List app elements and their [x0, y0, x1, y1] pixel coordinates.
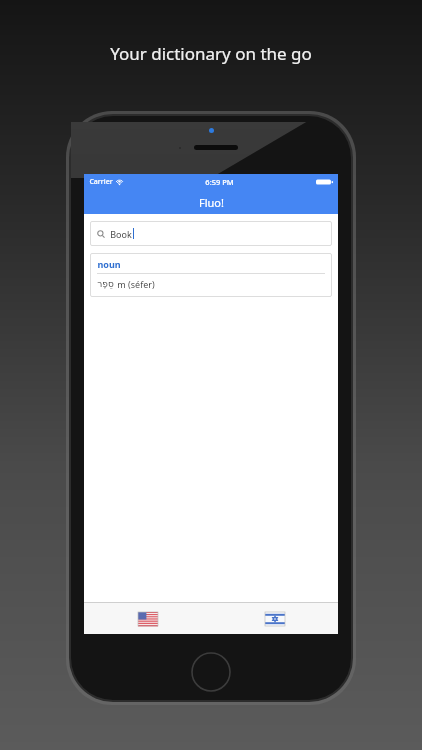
button[interactable]: Hebrew: [211, 603, 338, 634]
button[interactable]: Book: [90, 221, 332, 246]
staticText: Book: [110, 228, 132, 240]
staticText: 6:59 PM: [205, 177, 234, 187]
staticText: Carrier: [89, 177, 113, 187]
staticText: Fluo!: [199, 195, 224, 210]
staticText: noun: [97, 258, 121, 270]
staticText: סֵפֶר: [97, 279, 114, 289]
staticText: Your dictionary on the go: [110, 42, 312, 65]
button[interactable]: English: [84, 603, 211, 634]
staticText: m (séfer): [117, 278, 155, 290]
button[interactable]: noun: [90, 253, 332, 297]
